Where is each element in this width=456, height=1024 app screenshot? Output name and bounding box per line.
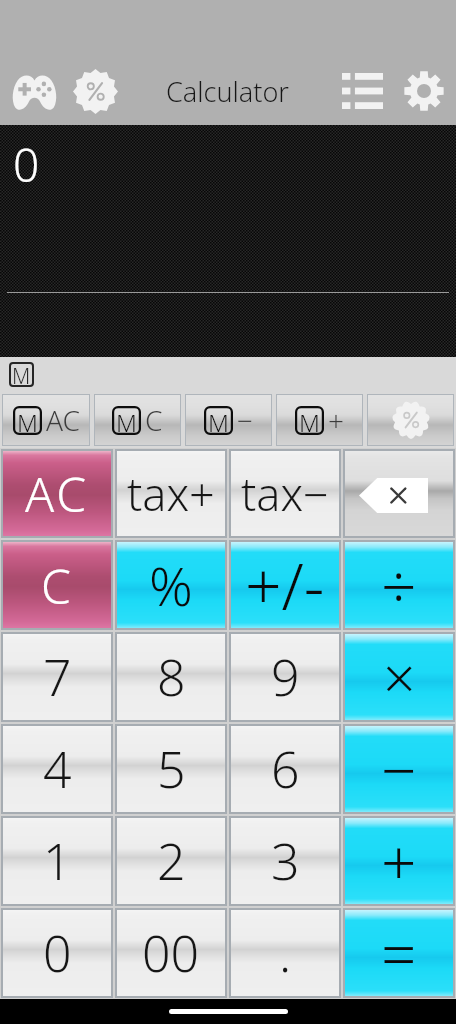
staticText: 0 bbox=[13, 133, 40, 196]
staticText: 9 bbox=[271, 643, 300, 711]
staticText: AC bbox=[25, 461, 90, 526]
staticText: − bbox=[381, 727, 417, 811]
staticText: tax− bbox=[241, 463, 329, 524]
staticText: 1 bbox=[43, 827, 72, 895]
button[interactable]: C bbox=[3, 542, 111, 628]
staticText: 4 bbox=[43, 735, 72, 803]
staticText: 8 bbox=[157, 643, 186, 711]
button[interactable]: M bbox=[95, 395, 180, 445]
button[interactable]: + bbox=[345, 818, 453, 904]
button[interactable]: 00 bbox=[117, 910, 225, 996]
staticText: 00 bbox=[142, 919, 200, 987]
staticText: = bbox=[381, 911, 417, 995]
staticText: tax+ bbox=[127, 463, 215, 524]
staticText: 7 bbox=[43, 643, 72, 711]
button[interactable]: Settings bbox=[397, 64, 451, 118]
button[interactable]: tax− bbox=[231, 451, 339, 536]
button[interactable]: 5 bbox=[117, 726, 225, 812]
staticText: . bbox=[279, 919, 292, 987]
button[interactable]: = bbox=[345, 910, 453, 996]
button[interactable]: 6 bbox=[231, 726, 339, 812]
button[interactable]: − bbox=[345, 726, 453, 812]
staticText: 0 bbox=[43, 919, 72, 987]
staticText: 2 bbox=[157, 827, 186, 895]
button[interactable]: M bbox=[277, 395, 362, 445]
staticText: + bbox=[381, 819, 417, 903]
staticText: 6 bbox=[271, 735, 300, 803]
button[interactable]: 3 bbox=[231, 818, 339, 904]
staticText: M bbox=[208, 406, 229, 435]
button[interactable]: × bbox=[345, 634, 453, 720]
button[interactable]: 8 bbox=[117, 634, 225, 720]
staticText: 5 bbox=[157, 735, 186, 803]
staticText: AC bbox=[46, 401, 80, 439]
button[interactable]: 9 bbox=[231, 634, 339, 720]
staticText: % bbox=[149, 548, 193, 622]
button[interactable]: 7 bbox=[3, 634, 111, 720]
button[interactable]: tax+ bbox=[117, 451, 225, 536]
button[interactable]: 4 bbox=[3, 726, 111, 812]
button[interactable]: 2 bbox=[117, 818, 225, 904]
button[interactable]: ÷ bbox=[345, 542, 453, 628]
staticText: − bbox=[237, 401, 253, 439]
button[interactable]: Tax rate bbox=[68, 64, 122, 118]
staticText: +/- bbox=[245, 542, 325, 628]
button[interactable]: Games bbox=[7, 64, 61, 118]
button[interactable]: Backspace bbox=[345, 451, 453, 536]
staticText: ÷ bbox=[381, 543, 417, 627]
staticText: × bbox=[383, 638, 416, 716]
staticText: 3 bbox=[271, 827, 300, 895]
button[interactable]: +/- bbox=[231, 542, 339, 628]
button[interactable]: AC bbox=[3, 451, 111, 536]
staticText: C bbox=[41, 553, 74, 618]
button[interactable]: % bbox=[117, 542, 225, 628]
staticText: C bbox=[145, 401, 163, 439]
button[interactable]: M bbox=[3, 395, 89, 445]
button[interactable]: M bbox=[186, 395, 271, 445]
staticText: M bbox=[299, 406, 320, 435]
staticText: M bbox=[12, 362, 31, 387]
button[interactable]: History bbox=[335, 64, 389, 118]
staticText: + bbox=[328, 401, 344, 439]
button[interactable]: 1 bbox=[3, 818, 111, 904]
staticText: M bbox=[116, 406, 137, 435]
button[interactable]: Tax bbox=[368, 395, 453, 445]
staticText: Calculator bbox=[166, 73, 289, 110]
button[interactable]: 0 bbox=[3, 910, 111, 996]
button[interactable]: . bbox=[231, 910, 339, 996]
staticText: M bbox=[17, 406, 38, 435]
